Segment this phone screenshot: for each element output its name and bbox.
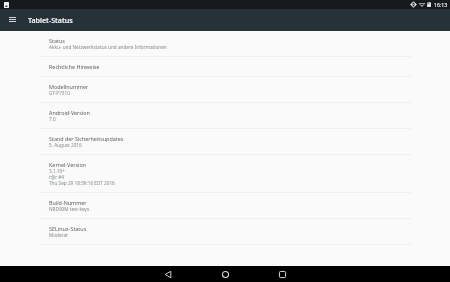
staticText: Thu Sep 29 18:59:16 EDT 2016: [49, 180, 115, 186]
button[interactable]: Modellnummer: [0, 77, 450, 103]
staticText: SELinux-Status: [49, 225, 87, 232]
staticText: 7.0: [49, 116, 56, 122]
staticText: Stand der Sicherheitsupdates: [49, 135, 124, 142]
button[interactable]: Android-Version: [0, 103, 450, 129]
staticText: 5. August 2016: [49, 142, 82, 148]
staticText: 16:13: [434, 1, 448, 8]
staticText: Tablet-Status: [28, 15, 73, 25]
staticText: Kernel-Version: [49, 161, 87, 168]
button[interactable]: SELinux-Status: [0, 219, 450, 245]
staticText: NRD90M test-keys: [49, 206, 90, 212]
staticText: Akku- und Netzwerkstatus und andere Info…: [49, 44, 167, 50]
staticText: Build-Nummer: [49, 199, 87, 206]
staticText: Android-Version: [49, 109, 90, 116]
button[interactable]: Kernel-Version: [0, 155, 450, 193]
button[interactable]: Stand der Sicherheitsupdates: [0, 129, 450, 155]
button[interactable]: Build-Nummer: [0, 193, 450, 219]
staticText: Moderat: [49, 232, 68, 238]
staticText: GT-P7310: [49, 90, 70, 96]
staticText: Modellnummer: [49, 83, 89, 90]
button[interactable]: Status: [0, 31, 450, 57]
button[interactable]: Open navigation menu: [0, 9, 22, 31]
button[interactable]: Recent apps: [257, 266, 307, 282]
staticText: Status: [49, 37, 65, 44]
button[interactable]: Home: [200, 266, 250, 282]
button[interactable]: Back: [143, 266, 193, 282]
staticText: r@r #4: [49, 174, 65, 180]
staticText: Rechtliche Hinweise: [49, 63, 100, 70]
button[interactable]: Rechtliche Hinweise: [0, 57, 450, 77]
staticText: 3.1.10+: [49, 168, 65, 174]
